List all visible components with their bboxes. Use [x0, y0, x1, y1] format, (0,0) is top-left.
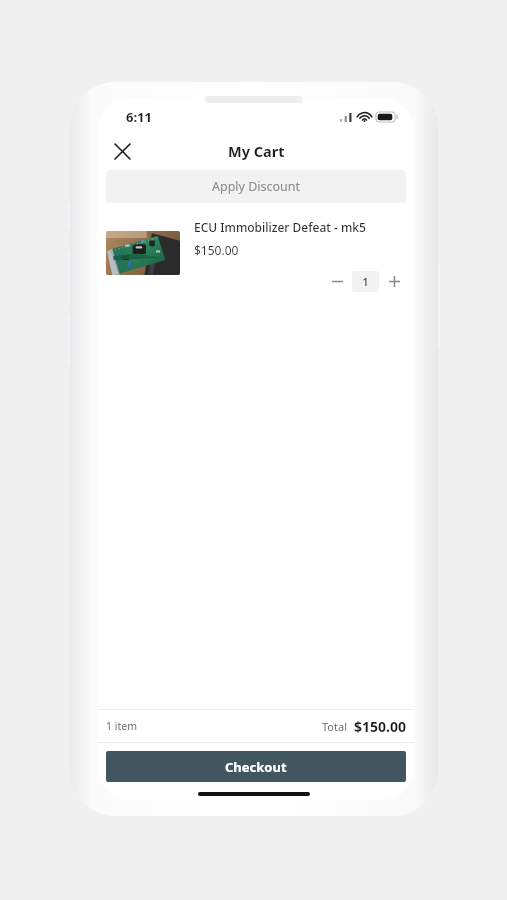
button[interactable]: ECU Immobilizer Defeat - mk5	[106, 219, 406, 293]
button[interactable]: Checkout	[106, 751, 406, 782]
staticText: Checkout	[225, 758, 287, 776]
button[interactable]: Apply Discount	[106, 170, 406, 203]
staticText: 6:11	[126, 108, 152, 126]
staticText: ECU Immobilizer Defeat - mk5	[194, 219, 366, 235]
button[interactable]: Close	[104, 133, 140, 169]
button[interactable]: 1	[352, 271, 379, 292]
button[interactable]: Decrease quantity	[325, 269, 349, 293]
button[interactable]: Increase quantity	[382, 269, 406, 293]
staticText: $150.00	[354, 717, 406, 736]
staticText: Apply Discount	[212, 178, 301, 195]
staticText: $150.00	[194, 242, 239, 258]
staticText: Total	[322, 719, 347, 734]
staticText: My Cart	[228, 141, 285, 161]
staticText: 1 item	[106, 719, 137, 733]
staticText: 1	[362, 274, 369, 290]
